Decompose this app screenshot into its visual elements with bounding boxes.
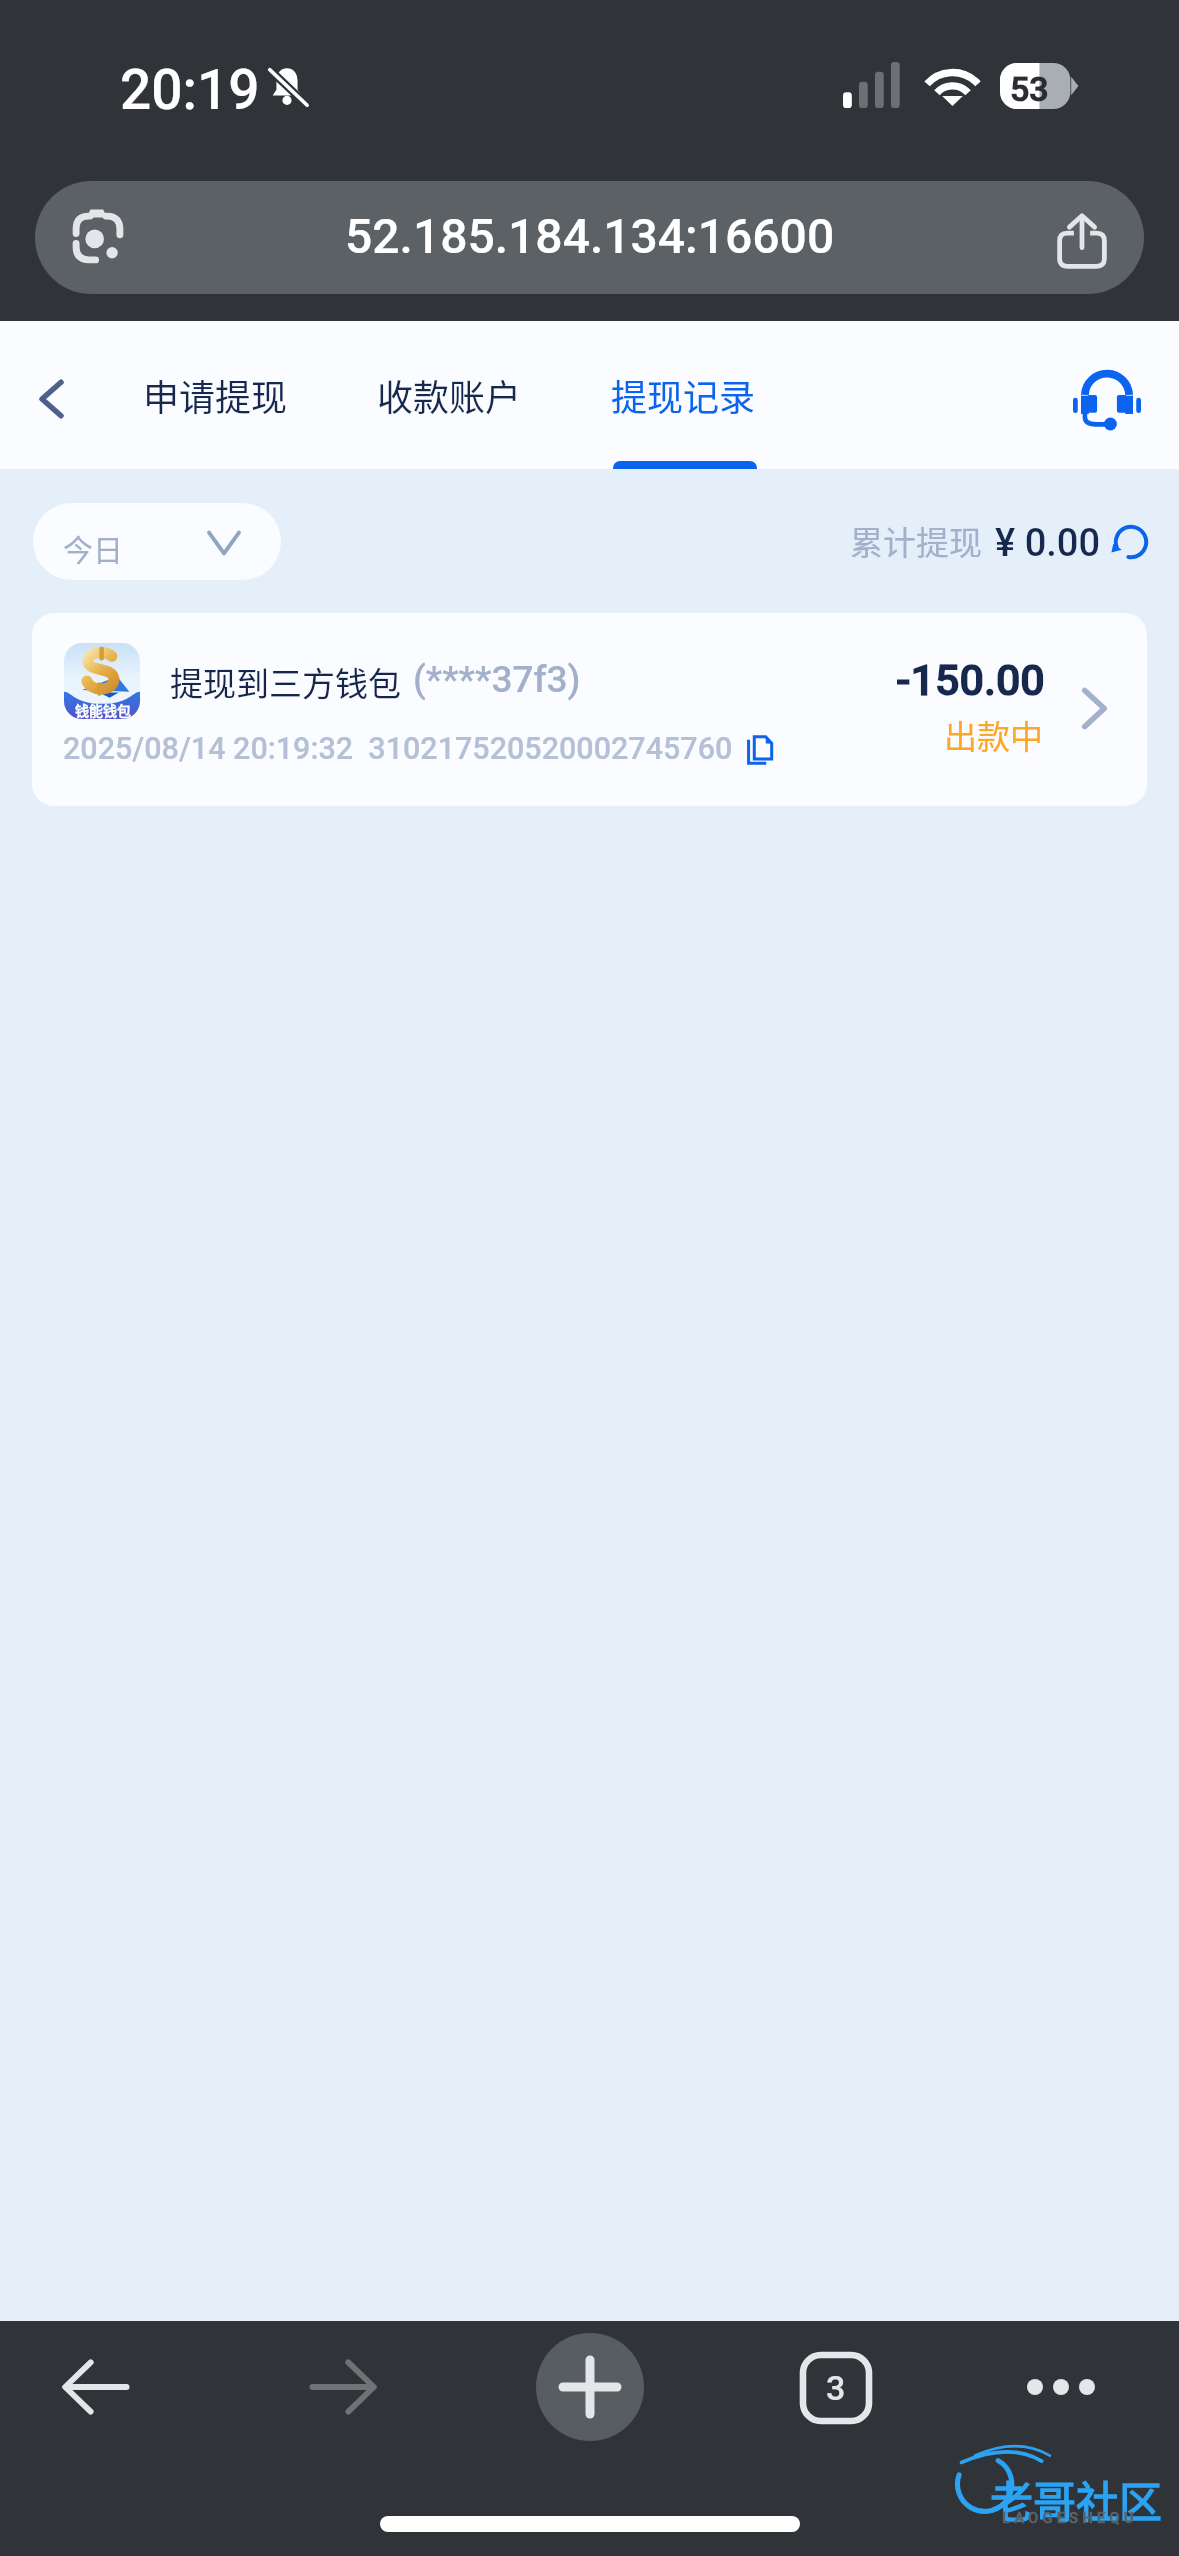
staticText: (****37f3): [413, 658, 581, 701]
button[interactable]: Tabs: [779, 2332, 892, 2444]
button[interactable]: Customer service: [1056, 337, 1156, 453]
staticText: -150.00: [896, 655, 1045, 705]
button[interactable]: Search with camera: [35, 181, 1144, 294]
staticText: ¥ 0.00: [995, 521, 1100, 566]
button[interactable]: 收款账户: [360, 347, 538, 443]
staticText: 钱能钱包: [75, 700, 131, 719]
staticText: 52.185.184.134:16600: [345, 208, 835, 264]
button[interactable]: Copy order number: [732, 723, 788, 777]
button[interactable]: Back: [35, 2327, 155, 2447]
button[interactable]: 今日: [33, 503, 281, 580]
button[interactable]: New tab: [536, 2333, 644, 2441]
button[interactable]: Forward: [283, 2327, 403, 2447]
staticText: 老哥社区: [990, 2468, 1162, 2530]
button[interactable]: Share: [1054, 210, 1110, 268]
staticText: 今日: [63, 526, 123, 569]
staticText: 20:19: [120, 58, 260, 122]
staticText: 累计提现: [850, 517, 982, 565]
staticText: 提现到三方钱包: [170, 658, 401, 706]
staticText: LAOGESHEQU: [1002, 2509, 1138, 2527]
staticText: 3: [826, 2368, 846, 2408]
button[interactable]: Back: [12, 344, 90, 446]
button[interactable]: 提现记录: [594, 347, 772, 443]
button[interactable]: 申请提现: [126, 347, 304, 443]
staticText: 53: [1010, 69, 1049, 109]
staticText: 出款中: [944, 711, 1043, 759]
staticText: 收款账户: [377, 369, 522, 421]
staticText: 申请提现: [143, 369, 288, 421]
button[interactable]: Search with camera: [68, 208, 128, 268]
staticText: 提现记录: [611, 369, 756, 421]
staticText: 2025/08/14 20:19:32 31021752052000274576…: [63, 731, 733, 767]
button[interactable]: More options: [1001, 2327, 1121, 2447]
button[interactable]: 钱能钱包: [32, 613, 1147, 806]
button[interactable]: Refresh: [1104, 514, 1158, 570]
